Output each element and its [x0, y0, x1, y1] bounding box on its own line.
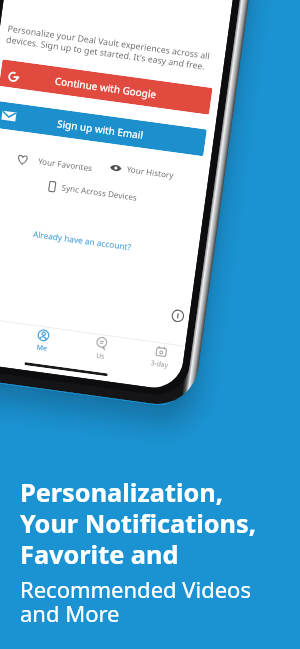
staticText: Us — [96, 351, 106, 361]
staticText: Continue with Google — [54, 74, 157, 101]
staticText: Sign up with Email — [56, 116, 144, 142]
staticText: and More — [20, 598, 120, 628]
button[interactable]: Me — [12, 323, 72, 361]
staticText: Favorite and — [20, 537, 179, 571]
button[interactable]: Continue with Google — [0, 59, 213, 115]
button[interactable]: Info — [170, 308, 185, 323]
staticText: Your History — [126, 163, 175, 180]
staticText: 3-day — [150, 358, 169, 370]
staticText: Your Favorites — [37, 155, 93, 173]
staticText: Recommended Videos — [20, 574, 251, 604]
staticText: Me — [36, 343, 48, 353]
staticText: Sync Across Devices — [61, 181, 138, 203]
button[interactable]: Already have an account? — [32, 228, 132, 252]
button[interactable]: 3-day — [130, 340, 185, 376]
staticText: Personalize your Deal Vault experiences … — [5, 23, 219, 74]
button[interactable]: Sign up with Email — [0, 101, 207, 156]
staticText: Your Notifications, — [20, 506, 256, 540]
button[interactable]: Us — [70, 331, 131, 369]
staticText: Personalization, — [20, 475, 223, 509]
